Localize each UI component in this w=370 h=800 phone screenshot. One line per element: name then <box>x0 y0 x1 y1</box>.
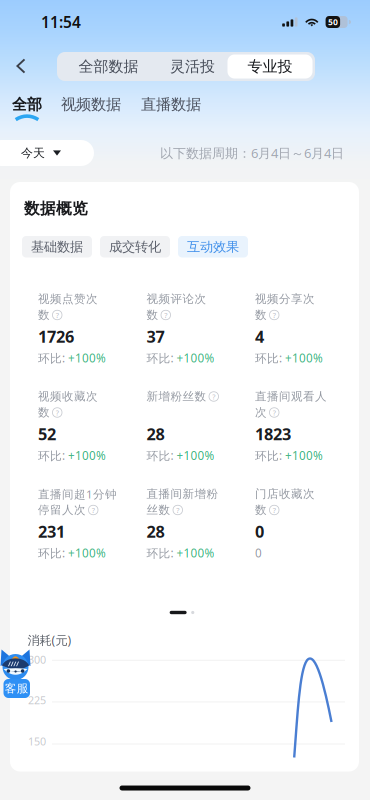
staticText: 数 <box>255 503 267 517</box>
staticText: 环比: <box>38 350 68 366</box>
button[interactable]: 直播数据 <box>141 97 201 112</box>
staticText: ? <box>92 505 95 515</box>
staticText: 灵活投 <box>170 57 215 76</box>
button[interactable]: 全部 <box>12 97 42 122</box>
button[interactable]: 灵活投 <box>157 54 227 78</box>
staticText: ? <box>56 310 59 320</box>
staticText: ? <box>56 407 59 418</box>
staticText: 231 <box>38 520 65 543</box>
staticText: ? <box>273 310 276 320</box>
staticText: 37 <box>146 325 164 348</box>
button[interactable]: 今天 <box>0 140 94 166</box>
staticText: +100% <box>285 447 323 463</box>
staticText: +100% <box>176 545 214 561</box>
staticText: 丝数 <box>146 503 170 517</box>
staticText: 数 <box>146 308 158 322</box>
button[interactable]: 成交转化 <box>100 236 170 257</box>
button[interactable]: 全部数据 <box>59 54 157 78</box>
staticText: 环比: <box>38 545 68 561</box>
staticText: 客服 <box>5 681 29 696</box>
staticText: 50 <box>328 16 338 28</box>
staticText: 直播间超1分钟 <box>38 486 117 502</box>
staticText: 互动效果 <box>187 238 239 255</box>
staticText: 视频评论次 <box>146 292 206 306</box>
staticText: 150 <box>28 734 46 748</box>
staticText: 以下数据周期：6月4日～6月4日 <box>160 144 344 162</box>
staticText: 直播间新增粉 <box>146 487 218 501</box>
staticText: 今天 <box>21 145 45 160</box>
staticText: ? <box>212 391 215 402</box>
button[interactable]: 互动效果 <box>178 236 248 257</box>
staticText: 环比: <box>146 350 176 366</box>
staticText: 28 <box>146 423 164 445</box>
staticText: 直播间观看人 <box>255 389 327 404</box>
staticText: 1823 <box>255 423 291 445</box>
button[interactable]: 基础数据 <box>22 236 92 257</box>
staticText: 全部数据 <box>78 57 138 76</box>
staticText: 视频数据 <box>61 95 121 114</box>
staticText: 225 <box>28 693 46 707</box>
staticText: 1726 <box>38 325 74 348</box>
staticText: +100% <box>176 447 214 463</box>
staticText: 0 <box>255 520 264 543</box>
staticText: 数据概览 <box>24 199 88 218</box>
button[interactable]: 客服 <box>0 649 32 699</box>
staticText: ? <box>176 505 179 515</box>
staticText: +100% <box>285 350 323 366</box>
staticText: 视频点赞次 <box>38 292 98 306</box>
staticText: 11:54 <box>41 11 81 32</box>
staticText: 环比: <box>38 447 68 463</box>
staticText: 次 <box>255 405 267 420</box>
staticText: 环比: <box>255 447 285 463</box>
staticText: 28 <box>146 520 164 543</box>
staticText: ? <box>273 505 276 515</box>
staticText: +100% <box>68 447 106 463</box>
staticText: 成交转化 <box>109 238 161 255</box>
button[interactable]: 专业投 <box>227 54 312 78</box>
staticText: 专业投 <box>247 57 292 76</box>
staticText: ? <box>273 407 276 418</box>
staticText: 视频收藏次 <box>38 389 98 404</box>
staticText: 环比: <box>146 545 176 561</box>
staticText: 环比: <box>146 447 176 463</box>
staticText: 停留人次 <box>38 503 86 517</box>
staticText: 消耗(元) <box>27 632 71 648</box>
staticText: 52 <box>38 423 56 445</box>
staticText: 0 <box>255 545 262 561</box>
staticText: 环比: <box>255 350 285 366</box>
staticText: 新增粉丝数 <box>146 389 206 404</box>
staticText: +100% <box>176 350 214 366</box>
staticText: ? <box>164 310 167 320</box>
staticText: 全部 <box>12 95 42 114</box>
staticText: +100% <box>68 350 106 366</box>
staticText: 数 <box>38 405 50 420</box>
staticText: 300 <box>28 652 46 667</box>
staticText: 基础数据 <box>31 238 83 255</box>
staticText: 4 <box>255 325 264 348</box>
staticText: 门店收藏次 <box>255 487 315 501</box>
staticText: 视频分享次 <box>255 292 315 306</box>
button[interactable]: 返回 <box>0 48 57 83</box>
staticText: 数 <box>255 308 267 322</box>
staticText: 数 <box>38 308 50 322</box>
staticText: +100% <box>68 545 106 561</box>
staticText: 直播数据 <box>141 95 201 114</box>
button[interactable]: 视频数据 <box>61 97 121 112</box>
